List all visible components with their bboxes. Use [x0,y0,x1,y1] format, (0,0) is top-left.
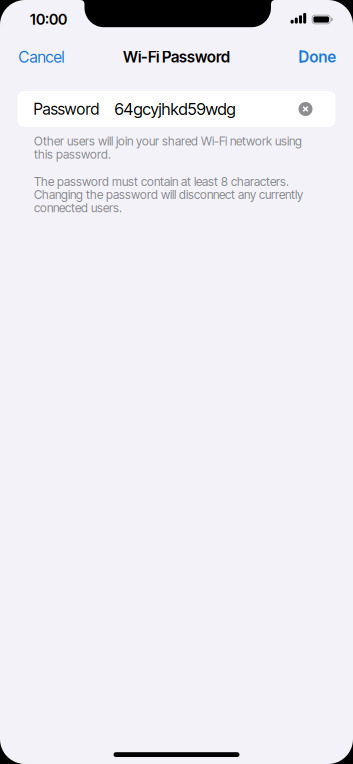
staticText: 10:00 [30,11,67,28]
staticText: Done [298,48,335,66]
staticText: Other users will join your shared Wi-Fi … [34,134,302,161]
staticText: The password must contain at least 8 cha… [34,175,303,214]
staticText: Cancel [18,48,64,66]
button[interactable]: Password [17,91,335,127]
staticText: Wi-Fi Password [123,48,230,66]
button[interactable]: Cancel [18,48,64,66]
staticText: 64gcyjhkd59wdg [114,99,235,119]
staticText: Password [33,100,99,118]
button[interactable]: Done [298,48,335,66]
button[interactable]: Clear text [298,102,312,116]
